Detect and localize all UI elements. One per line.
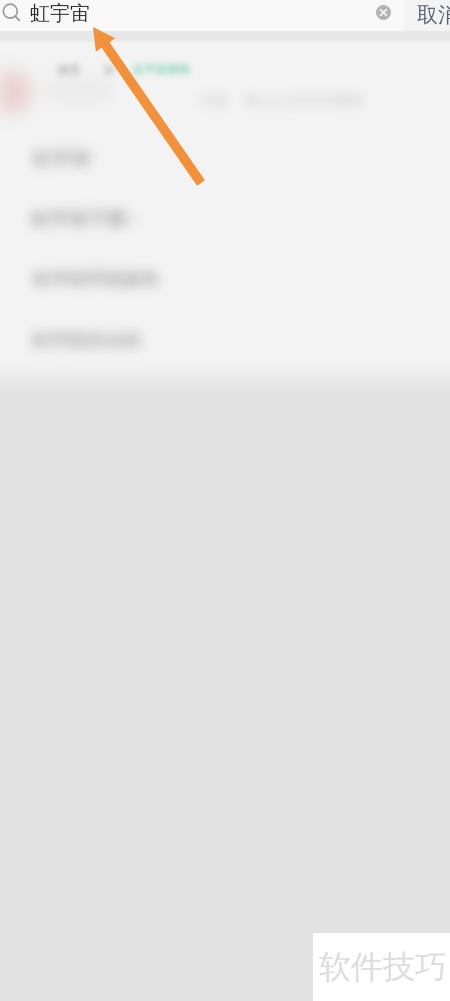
staticText: 虹宇宙游戏 bbox=[134, 62, 189, 76]
staticText: 取消 bbox=[417, 2, 450, 28]
button[interactable]: Search bbox=[0, 0, 405, 31]
staticText: 认 bbox=[104, 62, 115, 76]
staticText: 软件技巧 bbox=[319, 947, 447, 987]
staticText: 状态 bbox=[58, 62, 80, 76]
staticText: 虹宇宙下载 bbox=[31, 207, 126, 231]
button[interactable]: 取消 bbox=[405, 0, 450, 31]
staticText: 虹宇宙 bbox=[30, 1, 90, 26]
staticText: 虹宇宙手机版本 bbox=[33, 268, 159, 291]
staticText: 虹宇宙 bbox=[33, 147, 90, 171]
other: Search bbox=[0, 0, 31, 31]
staticText: 虹宇宙怎么玩 bbox=[32, 329, 140, 352]
button[interactable]: Clear search bbox=[371, 0, 395, 24]
